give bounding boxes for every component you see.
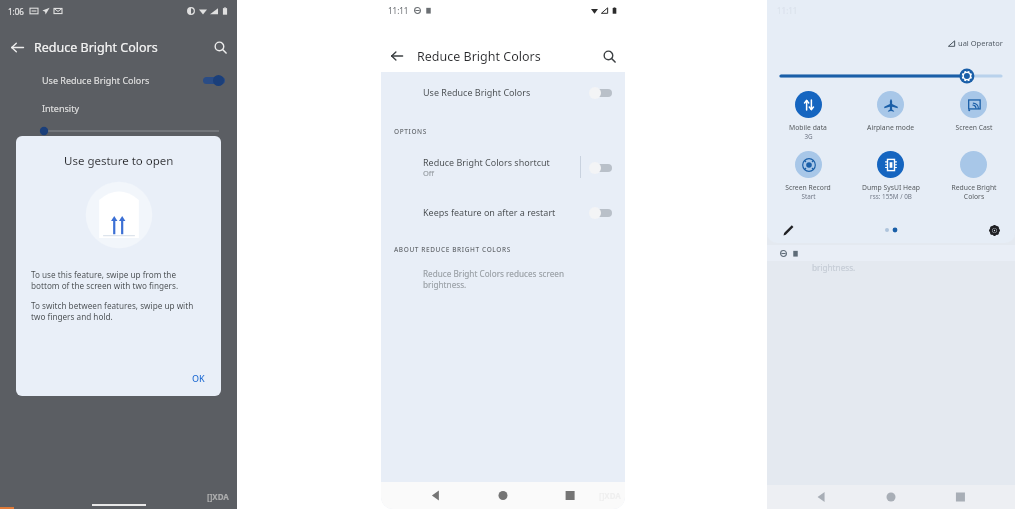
staticText: Keeps feature on after a restart bbox=[423, 206, 556, 218]
button[interactable]: Reduce Bright Colors bbox=[932, 148, 1015, 204]
button[interactable]: Reduce Bright Colors shortcut bbox=[381, 153, 625, 181]
staticText: 11:11 bbox=[388, 5, 409, 16]
staticText: 11:11 bbox=[777, 5, 798, 16]
staticText: Screen Cast bbox=[955, 123, 993, 132]
button[interactable]: Use Reduce Bright Colors bbox=[0, 68, 237, 92]
button[interactable]: Keeps feature on after a restart bbox=[381, 199, 625, 225]
staticText: OK bbox=[192, 372, 205, 384]
button[interactable]: Search bbox=[203, 30, 237, 64]
staticText: ABOUT REDUCE BRIGHT COLORS bbox=[394, 245, 511, 254]
button[interactable]: Dump SysUI Heap bbox=[849, 148, 932, 204]
staticText: Use Reduce Bright Colors bbox=[42, 74, 150, 86]
staticText: rss: 155M / 0B bbox=[870, 192, 912, 201]
staticText: Reduce Bright Colors shortcut bbox=[423, 156, 550, 168]
staticText: Start bbox=[801, 192, 816, 201]
staticText: Airplane mode bbox=[867, 123, 914, 132]
staticText: OPTIONS bbox=[394, 127, 427, 136]
staticText: To switch between features, swipe up wit… bbox=[31, 300, 206, 322]
staticText: Use Reduce Bright Colors bbox=[423, 86, 531, 98]
staticText: Reduce Bright Colors bbox=[417, 48, 541, 65]
staticText: brightness. bbox=[812, 262, 856, 273]
button[interactable]: OK bbox=[176, 364, 221, 392]
staticText: Dump SysUI Heap bbox=[862, 183, 920, 192]
button[interactable]: Edit bbox=[779, 221, 797, 239]
button[interactable]: Settings bbox=[985, 221, 1003, 239]
staticText: 1:06 bbox=[8, 6, 24, 17]
button[interactable]: Screen Record bbox=[767, 148, 849, 204]
button[interactable]: Screen Cast bbox=[932, 88, 1015, 135]
button[interactable]: Search bbox=[593, 40, 625, 72]
button[interactable]: Airplane mode bbox=[849, 88, 932, 135]
button[interactable]: Back bbox=[381, 40, 413, 72]
staticText: 3G bbox=[804, 132, 813, 141]
staticText: Screen Record bbox=[785, 183, 831, 192]
button[interactable]: Back bbox=[0, 30, 34, 64]
staticText: Mobile data bbox=[789, 123, 827, 132]
staticText: []XDA bbox=[599, 490, 621, 501]
staticText: To use this feature, swipe up from the b… bbox=[31, 269, 206, 291]
staticText: Reduce Bright Colors bbox=[951, 183, 997, 201]
staticText: ual Operator bbox=[958, 38, 1003, 48]
staticText: Off bbox=[423, 168, 435, 178]
staticText: Use gesture to open bbox=[64, 153, 174, 169]
staticText: []XDA bbox=[207, 491, 229, 502]
staticText: Reduce Bright Colors reduces screen brig… bbox=[423, 268, 583, 290]
button[interactable]: Mobile data bbox=[767, 88, 849, 144]
staticText: Intensity bbox=[42, 102, 79, 114]
button[interactable]: Brightness bbox=[767, 68, 1015, 84]
button[interactable]: Use Reduce Bright Colors bbox=[381, 78, 625, 106]
staticText: Reduce Bright Colors bbox=[34, 39, 158, 56]
